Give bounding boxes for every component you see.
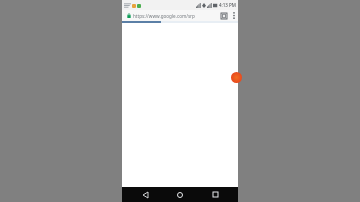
- staticText: 4:13 PM: [219, 2, 236, 8]
- staticText: https://www.google.com/srp: [133, 13, 195, 19]
- button[interactable]: Home: [168, 187, 192, 202]
- button[interactable]: Loading indicator: [231, 72, 242, 83]
- button[interactable]: Back: [133, 187, 157, 202]
- button[interactable]: Switch tabs: [218, 10, 229, 21]
- button[interactable]: More options: [229, 10, 238, 21]
- button[interactable]: https://www.google.com/srp: [122, 10, 218, 21]
- button[interactable]: Recent apps: [203, 187, 227, 202]
